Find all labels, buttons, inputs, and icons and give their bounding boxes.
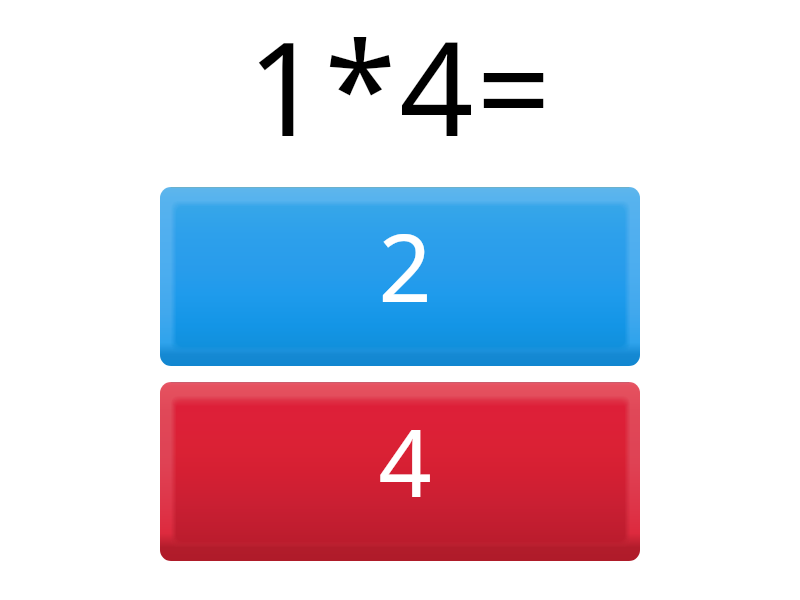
staticText: 4 (378, 398, 432, 525)
staticText: 1*4= (247, 0, 554, 174)
staticText: 2 (378, 203, 432, 330)
button[interactable]: Answer 4 (160, 382, 640, 561)
button[interactable]: Answer 2 (160, 187, 640, 366)
